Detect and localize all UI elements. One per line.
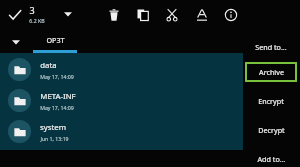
staticText: META-INF xyxy=(40,91,76,102)
staticText: Decrypt xyxy=(258,125,285,135)
button[interactable]: Expand xyxy=(58,4,78,24)
button[interactable]: Confirm xyxy=(3,3,27,27)
staticText: May 17, 14:09 xyxy=(40,73,74,80)
button[interactable]: Copy xyxy=(130,2,156,28)
button[interactable]: data xyxy=(0,54,300,85)
button[interactable]: Add to... xyxy=(245,149,297,167)
button[interactable]: Cut xyxy=(159,2,185,28)
button[interactable]: Delete xyxy=(101,2,127,28)
button[interactable]: Collapse path xyxy=(6,32,26,52)
button[interactable]: META-INF xyxy=(0,85,300,116)
staticText: May 17, 14:09 xyxy=(40,104,74,111)
button[interactable]: Send to... xyxy=(245,37,297,57)
staticText: Add to... xyxy=(257,154,286,164)
staticText: 6.2 KB xyxy=(29,17,45,24)
button[interactable]: Details xyxy=(218,2,244,28)
staticText: data xyxy=(40,60,57,71)
button[interactable]: OP3T xyxy=(33,30,77,53)
staticText: OP3T xyxy=(46,35,65,45)
button[interactable]: Decrypt xyxy=(245,120,297,140)
button[interactable]: Rename xyxy=(189,2,215,28)
staticText: Send to... xyxy=(255,42,287,52)
button[interactable]: Archive xyxy=(245,62,297,82)
button[interactable]: system xyxy=(0,116,300,147)
button[interactable]: Encrypt xyxy=(245,91,297,111)
staticText: system xyxy=(40,122,66,133)
staticText: Jun 1, 13:19 xyxy=(40,135,69,142)
staticText: Encrypt xyxy=(258,96,284,106)
staticText: Archive xyxy=(259,67,284,77)
staticText: 3 xyxy=(29,4,35,16)
